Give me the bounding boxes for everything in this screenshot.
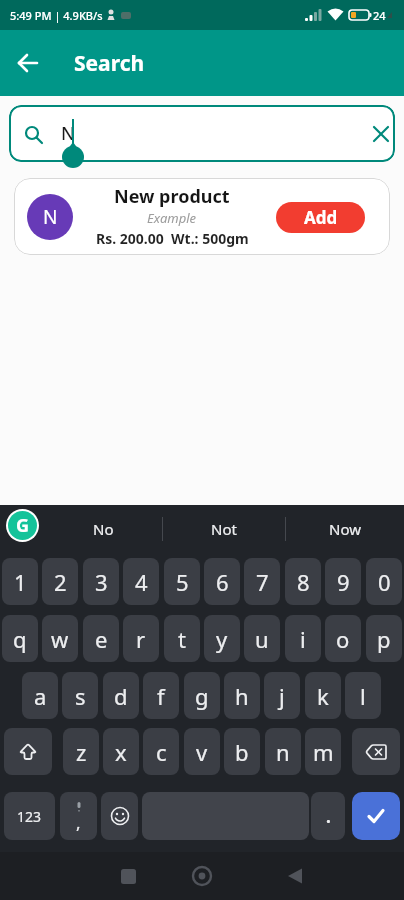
staticText: New product <box>114 184 230 209</box>
button[interactable] <box>352 728 400 775</box>
button[interactable]: 123 <box>4 792 55 840</box>
staticText: N <box>43 204 58 230</box>
button[interactable]: q <box>2 615 38 662</box>
staticText: Add <box>304 206 338 229</box>
button[interactable]: 2 <box>42 558 78 605</box>
staticText: r <box>136 624 146 654</box>
button[interactable] <box>101 792 138 840</box>
staticText: 3 <box>95 567 108 597</box>
staticText: 9 <box>337 567 350 597</box>
button[interactable]: a <box>22 672 58 719</box>
button[interactable]: 1 <box>2 558 38 605</box>
staticText: 0 <box>378 567 391 597</box>
staticText: s <box>75 681 86 711</box>
staticText: . <box>326 805 331 828</box>
staticText: i <box>300 624 306 654</box>
staticText: k <box>317 681 329 711</box>
button[interactable]: u <box>244 615 280 662</box>
button[interactable]: f <box>143 672 179 719</box>
button[interactable] <box>4 728 52 775</box>
staticText: G <box>16 513 30 538</box>
staticText: d <box>114 681 128 711</box>
button[interactable] <box>104 856 152 896</box>
staticText: Search <box>74 49 145 78</box>
staticText: 2 <box>54 567 67 597</box>
button[interactable]: t <box>164 615 200 662</box>
button[interactable]: k <box>305 672 341 719</box>
staticText: Now <box>329 519 361 539</box>
button[interactable]: 0 <box>366 558 402 605</box>
button[interactable]: i <box>285 615 321 662</box>
button[interactable]: d <box>103 672 139 719</box>
staticText: Rs. 200.00 Wt.: 500gm <box>96 229 249 248</box>
button[interactable]: 7 <box>244 558 280 605</box>
staticText: z <box>76 737 87 767</box>
staticText: q <box>13 624 27 654</box>
button[interactable]: 5 <box>164 558 200 605</box>
button[interactable]: 3 <box>83 558 119 605</box>
staticText: a <box>34 681 47 711</box>
button[interactable]: No <box>44 505 162 552</box>
button[interactable]: G <box>6 509 39 542</box>
staticText: 5:49 PM | 4.9KB/s <box>10 8 103 23</box>
button[interactable]: g <box>184 672 220 719</box>
staticText: v <box>196 737 208 767</box>
button[interactable]: 6 <box>204 558 240 605</box>
button[interactable]: N <box>9 105 395 162</box>
button[interactable]: l <box>345 672 381 719</box>
button[interactable] <box>0 30 56 96</box>
staticText: 5 <box>176 567 189 597</box>
staticText: n <box>276 737 290 767</box>
staticText: 1 <box>14 567 27 597</box>
staticText: y <box>216 624 228 654</box>
staticText: h <box>235 681 249 711</box>
staticText: p <box>377 624 391 654</box>
button[interactable]: c <box>143 728 179 775</box>
button[interactable]: o <box>325 615 361 662</box>
button[interactable]: s <box>62 672 98 719</box>
button[interactable] <box>352 792 400 840</box>
staticText: o <box>336 624 350 654</box>
button[interactable]: e <box>83 615 119 662</box>
button[interactable]: h <box>224 672 260 719</box>
button[interactable]: , <box>60 792 97 840</box>
button[interactable]: j <box>264 672 300 719</box>
button[interactable]: N <box>14 178 390 255</box>
staticText: 24 <box>373 8 386 23</box>
staticText: w <box>51 624 69 654</box>
staticText: e <box>95 624 108 654</box>
button[interactable]: 9 <box>325 558 361 605</box>
staticText: c <box>156 737 167 767</box>
button[interactable]: . <box>311 792 345 840</box>
staticText: b <box>235 737 249 767</box>
button[interactable] <box>271 856 319 896</box>
button[interactable]: x <box>103 728 139 775</box>
button[interactable]: b <box>224 728 260 775</box>
button[interactable]: Now <box>286 505 404 552</box>
button[interactable]: r <box>123 615 159 662</box>
button[interactable]: 4 <box>123 558 159 605</box>
button[interactable]: m <box>305 728 341 775</box>
staticText: x <box>115 737 127 767</box>
button[interactable]: Add <box>276 202 365 233</box>
staticText: 4 <box>135 567 148 597</box>
staticText: 8 <box>297 567 310 597</box>
staticText: m <box>313 737 334 767</box>
staticText: , <box>76 811 81 834</box>
button[interactable]: 8 <box>285 558 321 605</box>
staticText: N <box>61 121 75 146</box>
button[interactable] <box>178 856 226 896</box>
staticText: 6 <box>216 567 229 597</box>
button[interactable]: y <box>204 615 240 662</box>
button[interactable]: Not <box>163 505 285 552</box>
staticText: Example <box>147 209 197 227</box>
staticText: 123 <box>17 807 42 826</box>
staticText: j <box>279 681 285 711</box>
button[interactable]: p <box>366 615 402 662</box>
button[interactable]: v <box>184 728 220 775</box>
button[interactable]: w <box>42 615 78 662</box>
button[interactable]: z <box>63 728 99 775</box>
button[interactable]: n <box>265 728 301 775</box>
staticText: f <box>157 681 165 711</box>
